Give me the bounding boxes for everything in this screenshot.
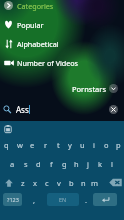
button[interactable]: ?123: [3, 193, 22, 206]
staticText: h: [74, 159, 79, 169]
staticText: d: [36, 159, 41, 169]
button[interactable]: Categories: [0, 0, 124, 15]
staticText: Categories: [17, 1, 54, 11]
staticText: w: [17, 140, 23, 150]
staticText: v: [57, 178, 61, 188]
button[interactable]: w: [13, 135, 26, 154]
button[interactable]: Clipboard: [2, 123, 13, 134]
staticText: b: [69, 178, 74, 188]
button[interactable]: p: [112, 135, 124, 154]
staticText: ?123: [7, 196, 19, 203]
button[interactable]: Pornstars: [72, 82, 118, 95]
staticText: e: [30, 140, 35, 150]
staticText: c: [45, 178, 49, 188]
staticText: u: [80, 140, 85, 150]
button[interactable]: .: [79, 193, 93, 206]
button[interactable]: EN: [47, 193, 79, 206]
button[interactable]: Popular: [0, 15, 124, 34]
staticText: o: [104, 140, 109, 150]
staticText: r: [44, 140, 48, 150]
button[interactable]: h: [70, 154, 82, 173]
button[interactable]: e: [26, 135, 39, 154]
staticText: Number of Videos: [17, 58, 79, 68]
button[interactable]: r: [39, 135, 52, 154]
staticText: g: [62, 159, 67, 169]
button[interactable]: Alphabetical: [0, 34, 124, 53]
button[interactable]: Number of Videos: [0, 53, 124, 72]
staticText: Alphabetical: [17, 39, 59, 49]
button[interactable]: u: [76, 135, 88, 154]
button[interactable]: Shift: [0, 173, 17, 192]
button[interactable]: q: [0, 135, 13, 154]
button[interactable]: j: [82, 154, 94, 173]
button[interactable]: y: [64, 135, 76, 154]
button[interactable]: s: [19, 154, 32, 173]
staticText: a: [10, 159, 15, 169]
button[interactable]: d: [32, 154, 45, 173]
staticText: i: [93, 140, 95, 150]
button[interactable]: ,: [22, 193, 47, 206]
staticText: EN: [59, 196, 67, 203]
staticText: m: [91, 178, 99, 188]
staticText: n: [81, 178, 86, 188]
button[interactable]: Backspace: [106, 173, 124, 192]
button[interactable]: b: [65, 173, 77, 192]
staticText: l: [111, 159, 113, 169]
button[interactable]: a: [6, 154, 19, 173]
staticText: Pornstars: [72, 84, 107, 94]
button[interactable]: v: [53, 173, 65, 192]
button[interactable]: l: [106, 154, 118, 173]
staticText: k: [98, 159, 103, 169]
staticText: .: [85, 195, 88, 205]
staticText: z: [21, 178, 25, 188]
staticText: Popular: [17, 20, 44, 30]
button[interactable]: g: [58, 154, 70, 173]
staticText: ,: [33, 195, 36, 205]
button[interactable]: i: [88, 135, 100, 154]
staticText: x: [33, 178, 37, 188]
staticText: p: [116, 140, 121, 150]
button[interactable]: t: [52, 135, 64, 154]
staticText: s: [24, 159, 28, 169]
staticText: y: [68, 140, 72, 150]
staticText: j: [87, 159, 89, 169]
staticText: f: [50, 159, 53, 169]
button[interactable]: x: [29, 173, 41, 192]
button[interactable]: n: [77, 173, 89, 192]
button[interactable]: z: [17, 173, 29, 192]
button[interactable]: k: [94, 154, 106, 173]
button[interactable]: o: [100, 135, 112, 154]
button[interactable]: m: [89, 173, 101, 192]
staticText: Ass: [16, 104, 29, 115]
button[interactable]: f: [45, 154, 58, 173]
staticText: q: [4, 140, 9, 150]
button[interactable]: Enter: [93, 193, 117, 206]
button[interactable]: c: [41, 173, 53, 192]
button[interactable]: Clear search: [109, 105, 118, 114]
staticText: t: [57, 140, 60, 150]
